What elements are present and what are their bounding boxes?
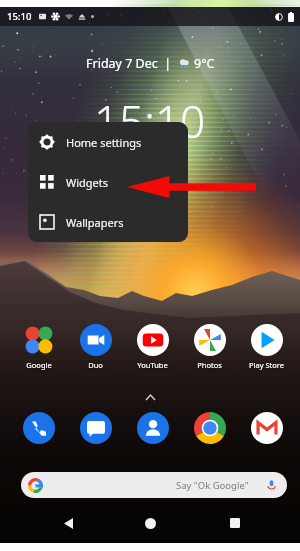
staticText: Duo <box>88 360 103 370</box>
staticText: Google <box>26 360 52 370</box>
button[interactable]: Duo <box>67 324 124 370</box>
staticText: Photos <box>197 360 222 370</box>
button[interactable]: Phone <box>10 412 67 444</box>
button[interactable]: Chrome <box>181 412 238 444</box>
button[interactable]: Gmail <box>238 412 295 444</box>
staticText: 15:10 <box>7 10 32 23</box>
button[interactable]: YouTube <box>124 324 181 370</box>
staticText: Wallpapers <box>66 215 124 230</box>
button[interactable]: Home <box>134 507 166 539</box>
button[interactable]: Widgets <box>28 162 188 202</box>
button[interactable]: Messages <box>67 412 124 444</box>
button[interactable]: Wallpapers <box>28 202 188 242</box>
staticText: Home settings <box>66 135 142 150</box>
button[interactable]: Play Store <box>238 324 295 370</box>
button[interactable]: Contacts <box>124 412 181 444</box>
staticText: YouTube <box>137 360 168 370</box>
staticText: 9°C <box>194 55 215 72</box>
button[interactable]: Back <box>52 507 84 539</box>
button[interactable]: Home settings <box>28 122 188 162</box>
button[interactable]: Photos <box>181 324 238 370</box>
staticText: 15:10 <box>94 91 206 151</box>
staticText: Say "Ok Google" <box>176 479 249 492</box>
staticText: Widgets <box>66 175 109 190</box>
staticText: Play Store <box>249 360 284 370</box>
button[interactable]: Say "Ok Google" <box>21 472 287 498</box>
button[interactable]: Recents <box>219 507 251 539</box>
button[interactable]: Google <box>10 324 67 370</box>
staticText: Friday 7 Dec | <box>86 55 172 72</box>
